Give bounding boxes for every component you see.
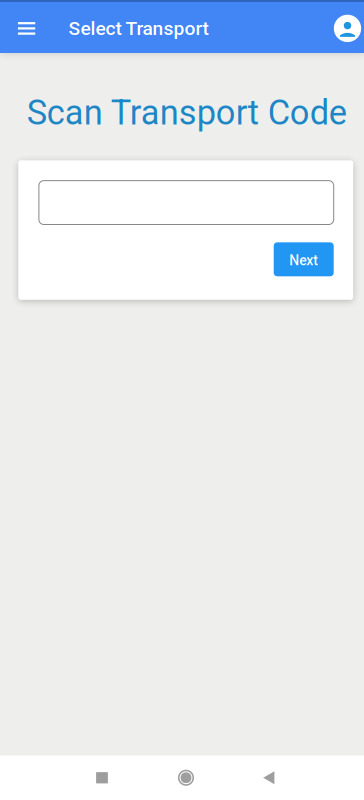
textField[interactable]	[51, 193, 334, 212]
button[interactable]: Next	[274, 242, 334, 276]
button[interactable]: Menu	[9, 10, 45, 46]
staticText: Next	[289, 252, 318, 269]
button[interactable]: Account	[334, 15, 361, 42]
button[interactable]: Home	[162, 755, 210, 800]
staticText: Select Transport	[69, 17, 209, 40]
button[interactable]: Back	[245, 755, 293, 800]
button[interactable]: Overview	[78, 755, 126, 800]
staticText: Scan Transport Code	[27, 93, 347, 133]
